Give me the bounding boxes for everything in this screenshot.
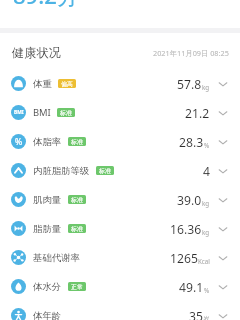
staticText: 健康状况 bbox=[12, 45, 61, 60]
staticText: 39.0 bbox=[177, 192, 202, 209]
staticText: 21.2 bbox=[185, 105, 210, 122]
staticText: 35 bbox=[189, 308, 203, 320]
button[interactable]: 内脏脂肪等级 bbox=[0, 156, 240, 185]
staticText: 体脂率 bbox=[33, 136, 62, 148]
other: 展开 bbox=[217, 281, 229, 293]
staticText: 体年龄 bbox=[33, 310, 62, 320]
staticText: 89.2分 bbox=[13, 0, 79, 10]
button[interactable]: 脂肪量 bbox=[0, 214, 240, 243]
other: 展开 bbox=[217, 194, 229, 206]
staticText: 16.36 bbox=[170, 221, 202, 238]
button[interactable]: 体重 bbox=[0, 69, 240, 98]
staticText: 体重 bbox=[33, 78, 52, 90]
staticText: kg bbox=[202, 199, 210, 207]
staticText: 岁 bbox=[203, 315, 210, 320]
staticText: 标准 bbox=[71, 225, 83, 232]
staticText: 57.8 bbox=[177, 76, 202, 93]
staticText: 脂肪量 bbox=[33, 223, 62, 235]
button[interactable]: BMI bbox=[0, 98, 240, 127]
button[interactable]: 肌肉量 bbox=[0, 185, 240, 214]
staticText: % bbox=[15, 136, 23, 148]
staticText: 肌肉量 bbox=[33, 194, 62, 206]
staticText: 1265 bbox=[170, 250, 198, 267]
staticText: 基础代谢率 bbox=[33, 252, 80, 264]
button[interactable]: 基础代谢率 bbox=[0, 243, 240, 272]
staticText: BMI bbox=[33, 106, 51, 119]
staticText: 正常 bbox=[71, 283, 83, 290]
other: 展开 bbox=[217, 310, 229, 320]
staticText: Kcal bbox=[198, 257, 210, 265]
button[interactable]: % bbox=[0, 127, 240, 156]
staticText: 偏高 bbox=[61, 80, 73, 87]
staticText: 体水分 bbox=[33, 281, 62, 293]
staticText: kg bbox=[202, 83, 210, 91]
other: 展开 bbox=[217, 78, 229, 90]
staticText: BMI bbox=[14, 109, 24, 116]
staticText: 2021年11月09日 08:25 bbox=[153, 48, 229, 58]
staticText: 标准 bbox=[71, 138, 83, 145]
button[interactable]: 体水分 bbox=[0, 272, 240, 301]
staticText: 49.1 bbox=[179, 279, 204, 296]
staticText: % bbox=[204, 141, 210, 149]
staticText: 28.3 bbox=[179, 134, 204, 151]
other: 展开 bbox=[217, 107, 229, 119]
staticText: 标准 bbox=[60, 109, 72, 116]
staticText: kg bbox=[202, 228, 210, 236]
other: 展开 bbox=[217, 223, 229, 235]
other: 展开 bbox=[217, 136, 229, 148]
staticText: % bbox=[204, 286, 210, 294]
staticText: 标准 bbox=[99, 167, 111, 174]
staticText: 内脏脂肪等级 bbox=[33, 165, 90, 177]
other: 展开 bbox=[217, 165, 229, 177]
staticText: 标准 bbox=[71, 196, 83, 203]
other: 展开 bbox=[217, 252, 229, 264]
staticText: 4 bbox=[203, 163, 210, 180]
button[interactable]: 体年龄 bbox=[0, 301, 240, 320]
